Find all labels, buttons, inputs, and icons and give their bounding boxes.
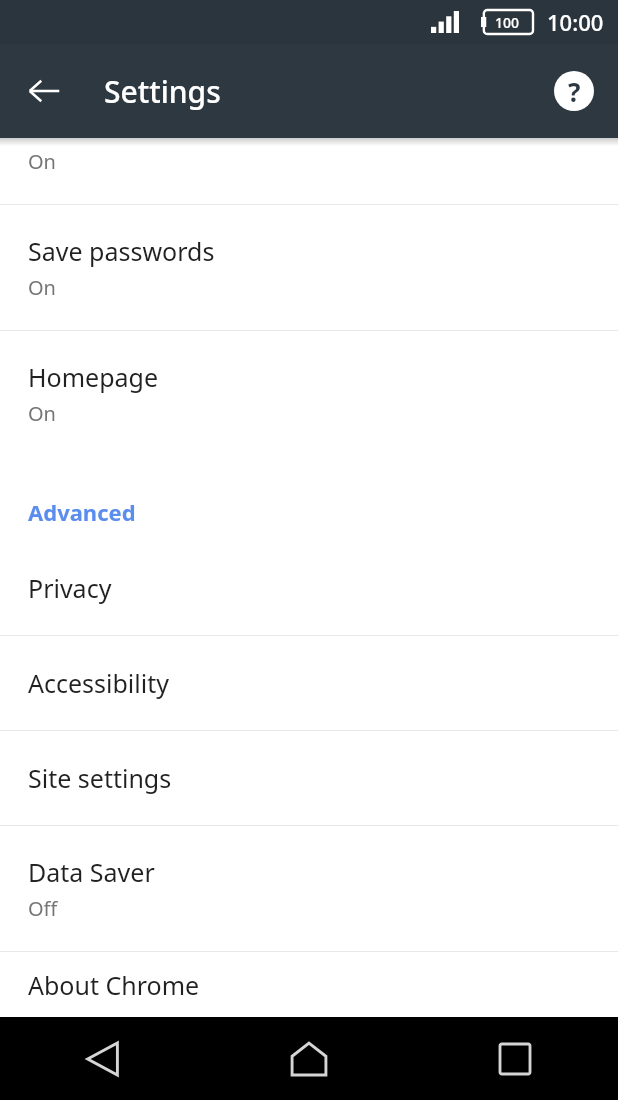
staticText: 10:00 xyxy=(547,7,604,37)
button[interactable]: Accessibility xyxy=(0,636,618,730)
staticText: On xyxy=(28,148,56,175)
staticText: Off xyxy=(28,895,58,922)
staticText: 100 xyxy=(495,13,520,32)
staticText: Settings xyxy=(104,71,221,112)
button[interactable]: Back xyxy=(18,65,70,117)
button[interactable]: Data Saver xyxy=(0,826,618,951)
staticText: Homepage xyxy=(28,360,159,394)
button[interactable]: On xyxy=(0,138,618,204)
staticText: Privacy xyxy=(28,571,112,605)
button[interactable]: About Chrome xyxy=(0,952,618,1017)
staticText: About Chrome xyxy=(28,968,200,1002)
staticText: Accessibility xyxy=(28,666,169,700)
staticText: ? xyxy=(568,74,581,109)
button[interactable]: Homepage xyxy=(0,331,618,456)
staticText: On xyxy=(28,274,56,301)
button[interactable]: Back xyxy=(0,1017,206,1100)
button[interactable]: Recent apps xyxy=(412,1017,618,1100)
button[interactable]: Help xyxy=(548,65,600,117)
staticText: Site settings xyxy=(28,761,172,795)
button[interactable]: Save passwords xyxy=(0,205,618,330)
button[interactable]: Home xyxy=(206,1017,412,1100)
staticText: Save passwords xyxy=(28,234,215,268)
staticText: Advanced xyxy=(28,497,136,527)
button[interactable]: Site settings xyxy=(0,731,618,825)
button[interactable]: Privacy xyxy=(0,541,618,635)
staticText: Data Saver xyxy=(28,855,155,889)
staticText: On xyxy=(28,400,56,427)
